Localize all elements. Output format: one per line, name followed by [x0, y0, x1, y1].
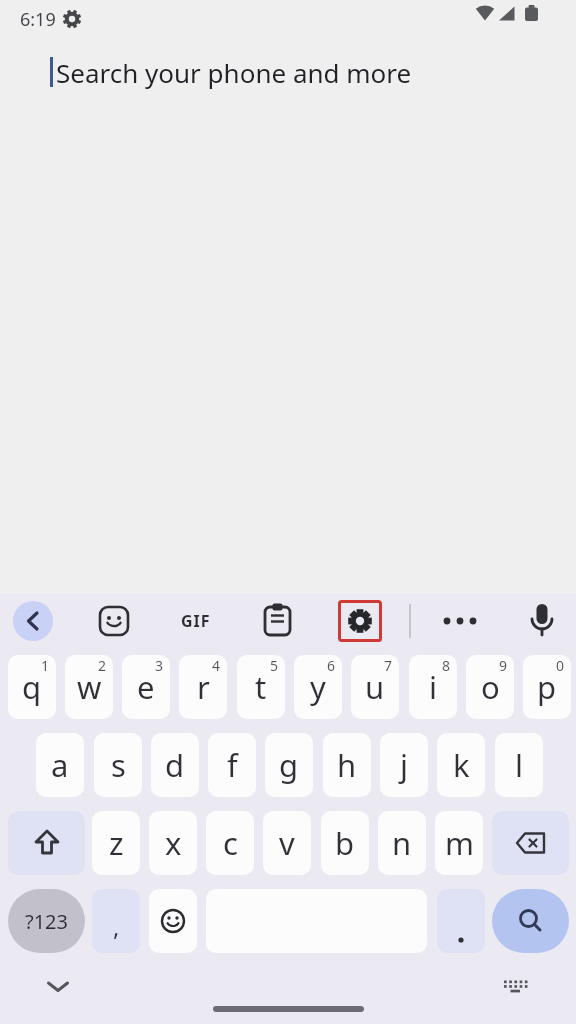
staticText: q — [22, 666, 42, 708]
button[interactable] — [438, 603, 482, 639]
staticText: z — [109, 822, 124, 864]
staticText: x — [165, 822, 182, 864]
staticText: b — [335, 822, 355, 864]
staticText: t — [255, 666, 267, 708]
button[interactable]: b — [321, 811, 369, 875]
button[interactable]: a — [36, 733, 84, 797]
staticText: 2 — [98, 656, 107, 675]
staticText: o — [481, 666, 500, 708]
staticText: 9 — [499, 656, 508, 675]
staticText: 6 — [327, 656, 336, 675]
staticText: ?123 — [25, 908, 68, 935]
button[interactable]: i — [409, 655, 457, 719]
staticText: n — [392, 822, 412, 864]
staticText: 3 — [155, 656, 164, 675]
button[interactable] — [149, 889, 197, 953]
staticText: h — [337, 744, 357, 786]
staticText: GIF — [181, 610, 211, 632]
button[interactable]: c — [206, 811, 254, 875]
button[interactable]: Search your phone and more — [56, 55, 412, 90]
staticText: l — [515, 744, 523, 786]
button[interactable] — [40, 974, 76, 1002]
button[interactable]: ?123 — [8, 889, 85, 953]
button[interactable] — [8, 811, 85, 875]
staticText: v — [279, 822, 295, 864]
staticText: w — [77, 666, 102, 708]
button[interactable]: u — [351, 655, 399, 719]
button[interactable] — [492, 811, 569, 875]
staticText: r — [197, 666, 210, 708]
button[interactable]: d — [151, 733, 199, 797]
button[interactable]: f — [208, 733, 256, 797]
staticText: 0 — [556, 656, 565, 675]
staticText: k — [453, 744, 470, 786]
staticText: 5 — [270, 656, 279, 675]
button[interactable]: n — [378, 811, 426, 875]
button[interactable]: k — [437, 733, 485, 797]
button[interactable]: s — [94, 733, 142, 797]
button[interactable] — [260, 602, 296, 638]
staticText: 1 — [41, 656, 50, 675]
button[interactable]: o — [466, 655, 514, 719]
staticText: a — [51, 744, 69, 786]
button[interactable]: m — [435, 811, 483, 875]
staticText: p — [537, 666, 557, 708]
staticText: s — [111, 744, 126, 786]
button[interactable]: y — [294, 655, 342, 719]
button[interactable]: l — [495, 733, 543, 797]
button[interactable] — [524, 601, 560, 641]
staticText: d — [165, 744, 185, 786]
button[interactable]: e — [122, 655, 170, 719]
staticText: i — [429, 666, 437, 708]
button[interactable]: w — [65, 655, 113, 719]
staticText: , — [113, 910, 120, 943]
staticText: 8 — [442, 656, 451, 675]
button[interactable]: g — [265, 733, 313, 797]
button[interactable] — [437, 889, 485, 953]
button[interactable] — [338, 600, 382, 642]
button[interactable]: v — [263, 811, 311, 875]
button[interactable]: q — [8, 655, 56, 719]
button[interactable]: , — [92, 889, 140, 953]
button[interactable] — [496, 976, 536, 1002]
button[interactable]: GIF — [172, 603, 220, 639]
staticText: y — [310, 666, 326, 708]
staticText: 4 — [212, 656, 221, 675]
staticText: 6:19 — [20, 7, 56, 32]
button[interactable]: r — [179, 655, 227, 719]
button[interactable]: p — [523, 655, 571, 719]
staticText: e — [137, 666, 155, 708]
staticText: u — [365, 666, 385, 708]
button[interactable]: h — [323, 733, 371, 797]
staticText: f — [227, 744, 238, 786]
button[interactable] — [492, 889, 569, 953]
staticText: c — [223, 822, 238, 864]
button[interactable] — [97, 604, 132, 639]
staticText: j — [400, 744, 408, 786]
button[interactable]: j — [380, 733, 428, 797]
button[interactable] — [13, 601, 53, 641]
staticText: 7 — [384, 656, 393, 675]
staticText: g — [279, 744, 299, 786]
button[interactable]: x — [149, 811, 197, 875]
button[interactable]: z — [92, 811, 140, 875]
staticText: m — [445, 822, 474, 864]
button[interactable]: t — [237, 655, 285, 719]
